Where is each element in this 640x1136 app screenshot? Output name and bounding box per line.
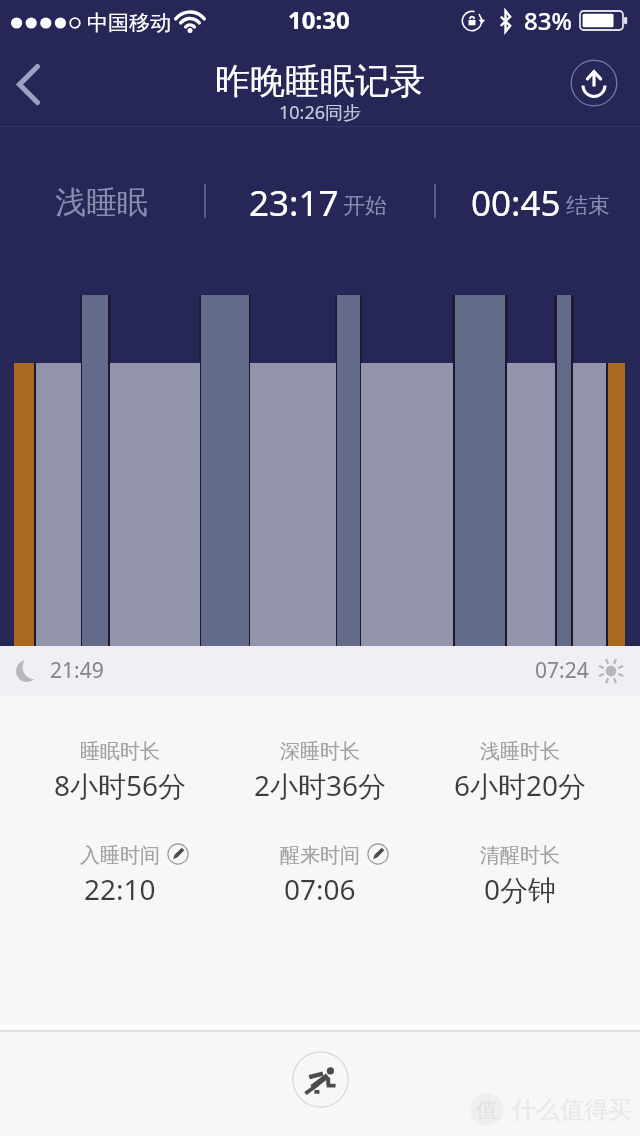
staticText: 21:49 xyxy=(50,656,104,685)
staticText: 8小时56分 xyxy=(54,766,187,804)
button[interactable]: Sync xyxy=(565,54,622,111)
staticText: 00:45 xyxy=(471,179,561,227)
staticText: 醒来时间 xyxy=(280,843,360,868)
staticText: 6小时20分 xyxy=(454,766,587,804)
staticText: 07:24 xyxy=(535,656,589,685)
staticText: 值 xyxy=(476,1097,497,1123)
staticText: 深睡时长 xyxy=(280,739,360,764)
staticText: 23:17 xyxy=(249,179,339,227)
staticText: 2小时36分 xyxy=(254,766,387,804)
staticText: 10:26同步 xyxy=(279,100,362,125)
staticText: 22:10 xyxy=(84,870,156,908)
button[interactable]: Activity xyxy=(292,1051,349,1108)
staticText: 昨晚睡眠记录 xyxy=(215,59,425,103)
staticText: 浅睡时长 xyxy=(480,739,560,764)
button[interactable]: 入睡时间 xyxy=(10,827,230,908)
staticText: 10:30 xyxy=(288,3,350,36)
staticText: 07:06 xyxy=(284,870,356,908)
staticText: 什么值得买 xyxy=(512,1095,632,1125)
staticText: 结束 xyxy=(566,192,610,220)
staticText: 入睡时间 xyxy=(80,843,160,868)
staticText: 83% xyxy=(524,4,572,37)
staticText: 开始 xyxy=(343,192,387,220)
button[interactable]: 醒来时间 xyxy=(210,827,430,908)
staticText: 睡眠时长 xyxy=(80,739,160,764)
button[interactable]: Back xyxy=(0,45,64,126)
staticText: 0分钟 xyxy=(484,870,557,908)
staticText: 清醒时长 xyxy=(480,843,560,868)
staticText: 浅睡眠 xyxy=(55,183,148,222)
staticText: 中国移动 xyxy=(87,10,171,36)
